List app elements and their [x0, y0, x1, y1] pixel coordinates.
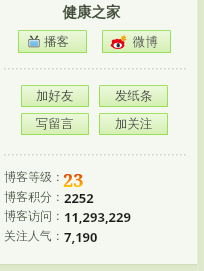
staticText: 发纸条: [115, 88, 153, 104]
staticText: 微博: [133, 34, 158, 50]
button[interactable]: 加好友: [21, 85, 89, 107]
staticText: 播客: [44, 34, 69, 50]
staticText: 博客访问：: [4, 208, 64, 223]
button[interactable]: 微博: [102, 30, 171, 53]
staticText: 写留言: [36, 116, 74, 132]
button[interactable]: 播客: [18, 30, 87, 53]
staticText: 博客积分：: [4, 189, 64, 204]
staticText: 加好友: [36, 88, 74, 104]
button[interactable]: 加关注: [99, 113, 168, 135]
staticText: 7,190: [64, 228, 98, 246]
button[interactable]: 发纸条: [99, 85, 168, 107]
staticText: 2252: [64, 189, 94, 207]
staticText: 23: [63, 168, 84, 193]
staticText: 博客等级：: [4, 169, 64, 184]
staticText: 关注人气：: [4, 228, 64, 243]
staticText: 加关注: [115, 116, 153, 132]
staticText: 11,293,229: [64, 208, 131, 226]
staticText: 健康之家: [0, 3, 183, 21]
button[interactable]: 写留言: [21, 113, 89, 135]
